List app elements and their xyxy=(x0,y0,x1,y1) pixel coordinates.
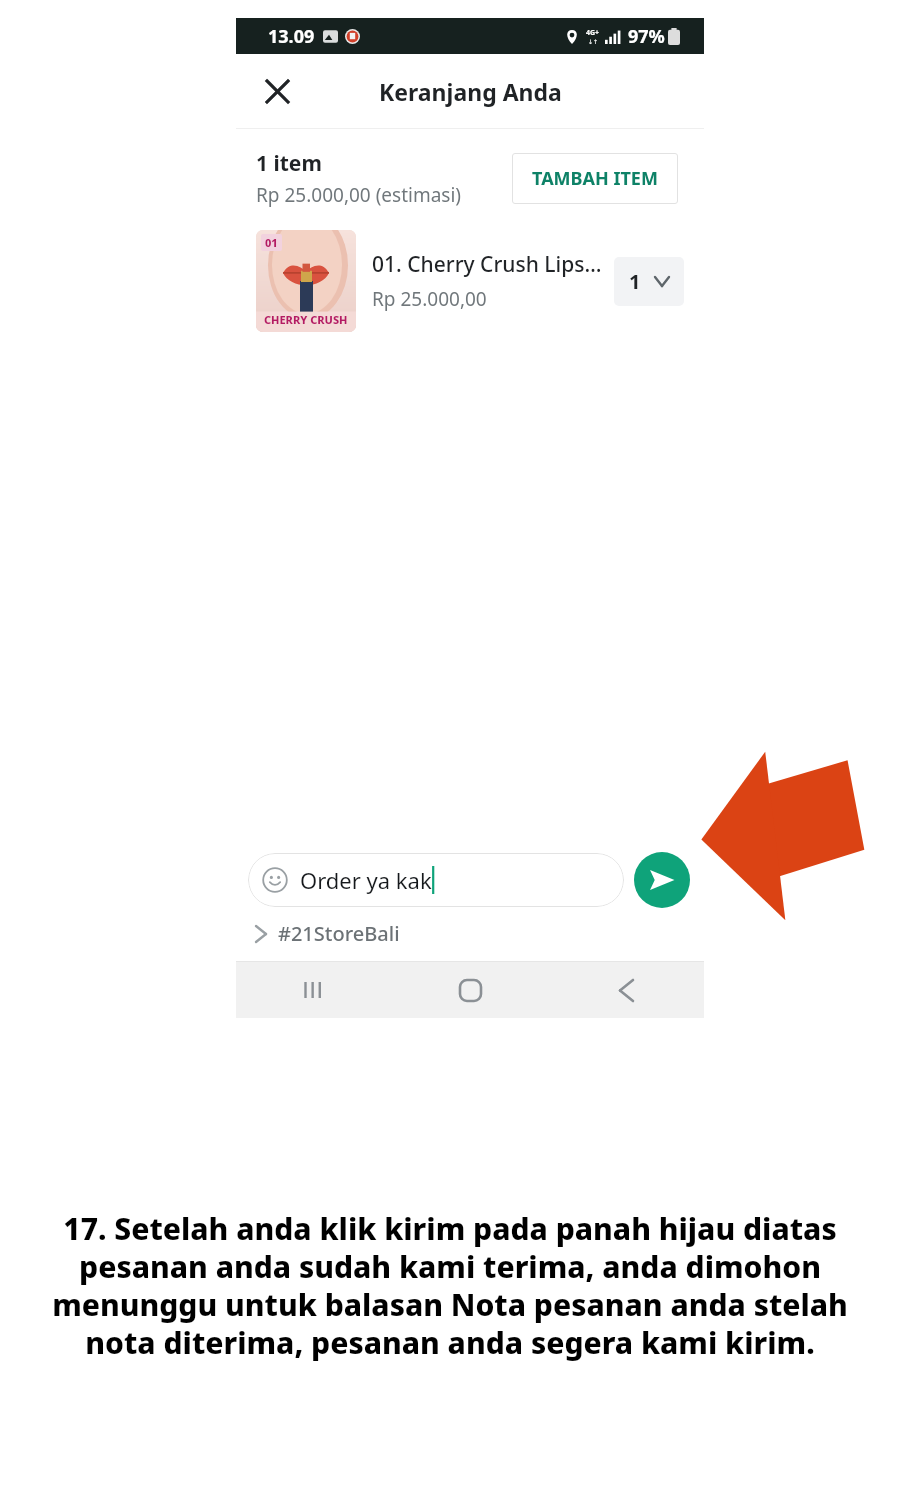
staticText: 13.09 xyxy=(268,24,315,49)
staticText: CHERRY CRUSH xyxy=(264,312,348,327)
staticText: 97% xyxy=(628,24,665,49)
staticText: 01 xyxy=(265,235,278,250)
staticText: 17. Setelah anda klik kirim pada panah h… xyxy=(52,1208,848,1363)
staticText: Keranjang Anda xyxy=(379,76,562,107)
staticText: 01. Cherry Crush Lipstik Im… xyxy=(372,250,606,279)
staticText: 1 xyxy=(629,268,641,295)
staticText: Rp 25.000,00 (estimasi) xyxy=(256,182,462,208)
staticText: TAMBAH ITEM xyxy=(532,166,658,191)
staticText: Rp 25.000,00 xyxy=(372,286,487,312)
button[interactable]: Recents xyxy=(236,962,392,1018)
button[interactable]: Order ya kak xyxy=(248,853,624,907)
button[interactable]: Home xyxy=(392,962,548,1018)
button[interactable]: Back xyxy=(548,962,704,1018)
button[interactable]: 1 xyxy=(614,257,684,306)
staticText: ↓↑ xyxy=(588,38,599,45)
button[interactable]: Send xyxy=(634,852,690,908)
staticText: 1 item xyxy=(256,149,322,178)
button[interactable]: #21StoreBali xyxy=(278,920,400,947)
staticText: 4G+ xyxy=(586,28,600,38)
button[interactable]: Close xyxy=(254,68,300,114)
staticText: Order ya kak xyxy=(300,865,432,895)
button[interactable]: TAMBAH ITEM xyxy=(512,153,678,204)
button[interactable]: CHERRY CRUSH xyxy=(236,208,704,332)
